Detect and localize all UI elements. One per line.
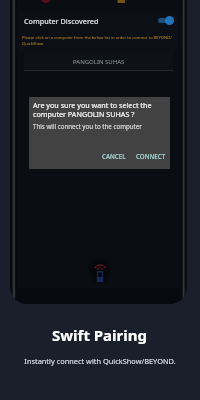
button[interactable]: CONNECT: [132, 149, 170, 163]
staticText: Swift Pairing: [52, 325, 148, 345]
staticText: PANGOLIN SUHAS: [73, 58, 125, 66]
button[interactable]: PANGOLIN SUHAS: [24, 52, 173, 71]
button[interactable]: Connect to computer: [86, 253, 114, 289]
staticText: Instantly connect with QuickShow/BEYOND.: [24, 356, 176, 366]
button[interactable]: Computer Discovered: [19, 12, 177, 52]
staticText: Computer Discovered: [24, 16, 99, 26]
staticText: CANCEL: [102, 152, 126, 160]
staticText: This will connect you to the computer: [33, 122, 142, 130]
button[interactable]: CANCEL: [98, 149, 130, 163]
staticText: CONNECT: [136, 152, 166, 160]
staticText: Please click on a computer from the belo…: [22, 35, 172, 46]
button[interactable]: Toggle computer discovery: [158, 15, 174, 26]
staticText: Are you sure you want to select the comp…: [33, 100, 152, 119]
